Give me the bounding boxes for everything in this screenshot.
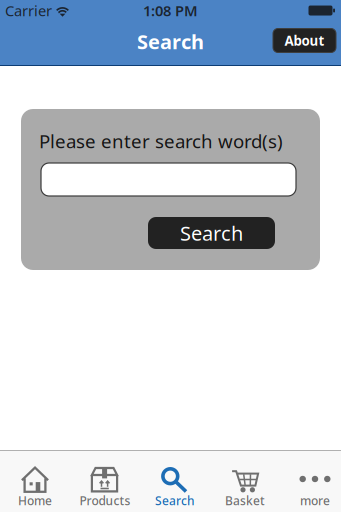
button[interactable]: Basket: [210, 451, 280, 512]
staticText: Basket: [225, 492, 265, 508]
staticText: About: [284, 32, 324, 49]
staticText: more: [300, 492, 330, 508]
staticText: Please enter search word(s): [39, 129, 283, 153]
staticText: Search: [137, 28, 204, 55]
staticText: Products: [79, 492, 130, 508]
staticText: Home: [18, 492, 52, 508]
staticText: Carrier: [5, 1, 52, 20]
button[interactable]: Home: [0, 451, 70, 512]
button[interactable]: About: [273, 28, 336, 52]
button[interactable]: more: [280, 451, 341, 512]
staticText: 1:08 PM: [143, 1, 198, 20]
staticText: Search: [155, 492, 195, 508]
button[interactable]: Search: [148, 217, 275, 249]
staticText: Search: [180, 220, 243, 246]
button[interactable]: Products: [70, 451, 140, 512]
button[interactable]: Search: [140, 451, 210, 512]
